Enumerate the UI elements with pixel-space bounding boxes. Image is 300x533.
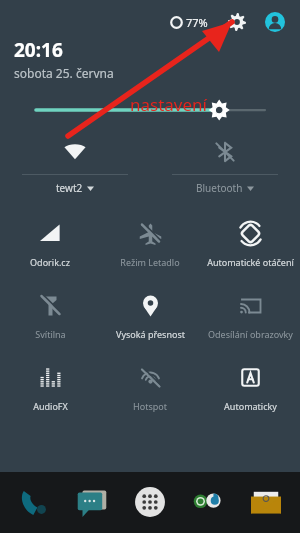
button[interactable]: Bluetooth xyxy=(150,132,300,200)
button[interactable]: Odorik.cz xyxy=(0,210,100,282)
other: Wi-Fi xyxy=(60,137,90,167)
button[interactable]: Automaticky xyxy=(200,354,300,426)
button[interactable]: AudioFX xyxy=(0,354,100,426)
staticText: Odesílání obrazovky xyxy=(208,328,293,340)
staticText: Odorik.cz xyxy=(30,256,70,268)
staticText: sobota 25. června xyxy=(14,65,114,81)
staticText: Automaticky xyxy=(224,400,277,412)
staticText: Bluetooth xyxy=(196,181,243,195)
button[interactable]: Settings xyxy=(224,9,250,35)
button[interactable]: Režim Letadlo xyxy=(100,210,200,282)
staticText: Hotspot xyxy=(133,400,167,412)
button[interactable]: Automatické otáčení xyxy=(200,210,300,282)
button[interactable]: Brightness xyxy=(0,84,300,126)
staticText: Režim Letadlo xyxy=(120,256,180,268)
button[interactable]: Vysoká přesnost xyxy=(100,282,200,354)
button[interactable]: Hotspot xyxy=(100,354,200,426)
staticText: 20:16 xyxy=(14,37,63,63)
staticText: Svítilna xyxy=(35,328,66,340)
staticText: AudioFX xyxy=(33,400,68,412)
button[interactable]: Phone xyxy=(12,480,56,524)
staticText: Vysoká přesnost xyxy=(116,328,185,340)
other: Bluetooth xyxy=(210,137,240,167)
button[interactable]: Email xyxy=(244,480,288,524)
button[interactable]: Battery 77 percent xyxy=(168,15,210,30)
staticText: Automatické otáčení xyxy=(207,256,294,268)
staticText: tewt2 xyxy=(56,181,83,195)
button[interactable]: Odesílání obrazovky xyxy=(200,282,300,354)
button[interactable]: Messaging xyxy=(70,480,114,524)
button[interactable]: Wi-Fi xyxy=(0,132,150,200)
staticText: nastavení xyxy=(130,93,207,116)
staticText: 77% xyxy=(186,15,208,30)
button[interactable]: Svítilna xyxy=(0,282,100,354)
button[interactable]: User profile xyxy=(262,9,288,35)
button[interactable]: Browser xyxy=(186,480,230,524)
button[interactable]: Apps xyxy=(128,480,172,524)
